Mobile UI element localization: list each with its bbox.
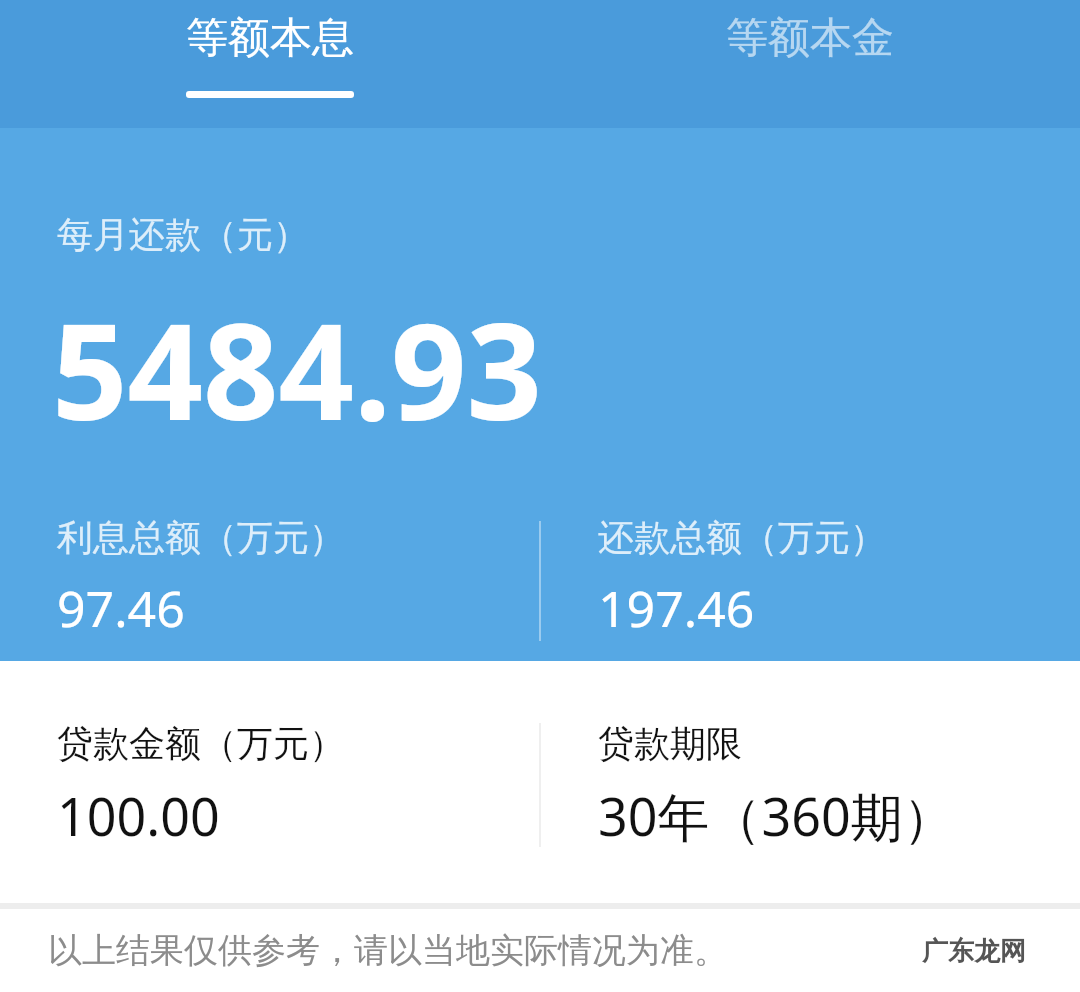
staticText: 利息总额（万元）	[57, 515, 345, 560]
button[interactable]: 等额本金	[540, 0, 1080, 98]
staticText: 等额本息	[186, 12, 354, 65]
staticText: 以上结果仅供参考，请以当地实际情况为准。	[48, 929, 728, 972]
staticText: 30年（360期）	[598, 780, 955, 851]
staticText: 97.46	[57, 574, 185, 642]
staticText: 197.46	[598, 574, 755, 642]
staticText: 贷款金额（万元）	[57, 721, 345, 766]
staticText: 广东龙网	[922, 935, 1026, 968]
staticText: 还款总额（万元）	[598, 515, 886, 560]
staticText: 5484.93	[52, 279, 543, 459]
button[interactable]: 等额本息	[0, 0, 540, 98]
staticText: 等额本金	[726, 12, 894, 65]
staticText: 100.00	[57, 780, 220, 851]
staticText: 贷款期限	[598, 721, 742, 766]
staticText: 每月还款（元）	[57, 212, 309, 257]
